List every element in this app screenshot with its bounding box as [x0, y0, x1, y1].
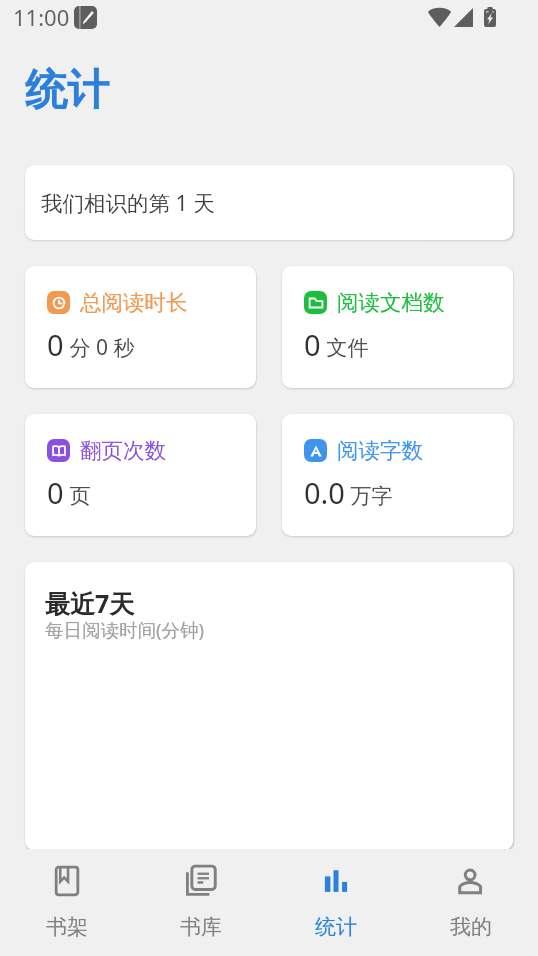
- staticText: 我的: [450, 914, 492, 940]
- button[interactable]: 我们相识的第 1 天: [25, 165, 513, 240]
- staticText: 万字: [345, 481, 393, 510]
- button[interactable]: 我的: [403, 849, 538, 956]
- button[interactable]: 书架: [0, 849, 134, 956]
- staticText: 阅读字数: [337, 437, 423, 464]
- staticText: 书库: [180, 914, 222, 940]
- staticText: 0: [47, 473, 64, 512]
- button[interactable]: 阅读字数: [282, 414, 513, 536]
- staticText: 最近7天: [45, 586, 135, 620]
- staticText: 每日阅读时间(分钟): [45, 617, 205, 642]
- button[interactable]: 统计: [268, 849, 403, 956]
- staticText: 文件: [321, 333, 369, 362]
- staticText: 我们相识的第 1 天: [41, 188, 215, 217]
- staticText: 页: [64, 481, 91, 510]
- staticText: 0.0: [304, 473, 345, 512]
- staticText: 阅读文档数: [337, 289, 445, 316]
- button[interactable]: 阅读文档数: [282, 266, 513, 388]
- staticText: 分 0 秒: [64, 333, 135, 362]
- button[interactable]: 书库: [134, 849, 268, 956]
- staticText: 统计: [25, 64, 109, 117]
- staticText: 翻页次数: [80, 437, 166, 464]
- staticText: 书架: [46, 914, 88, 940]
- staticText: 0: [304, 325, 321, 364]
- button[interactable]: 总阅读时长: [25, 266, 256, 388]
- button[interactable]: 翻页次数: [25, 414, 256, 536]
- staticText: 0: [47, 325, 64, 364]
- staticText: 总阅读时长: [80, 289, 188, 316]
- staticText: 统计: [315, 914, 357, 940]
- staticText: 11:00: [13, 2, 70, 32]
